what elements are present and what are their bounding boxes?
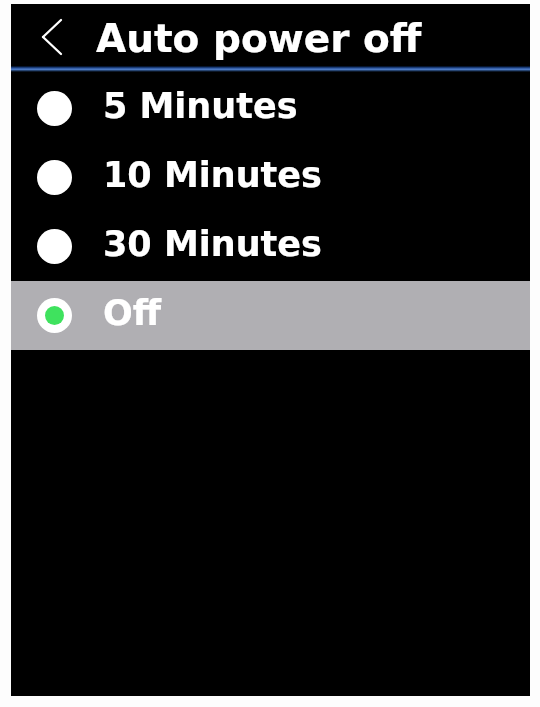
staticText: Auto power off (96, 16, 422, 61)
button[interactable]: Back (11, 4, 96, 66)
button[interactable]: 5 Minutes (11, 74, 530, 143)
staticText: Off (103, 293, 162, 334)
staticText: 30 Minutes (103, 224, 322, 265)
staticText: 10 Minutes (103, 155, 322, 196)
button[interactable]: 10 Minutes (11, 143, 530, 212)
button[interactable]: Off (11, 281, 530, 350)
staticText: 5 Minutes (103, 86, 298, 127)
button[interactable]: 30 Minutes (11, 212, 530, 281)
